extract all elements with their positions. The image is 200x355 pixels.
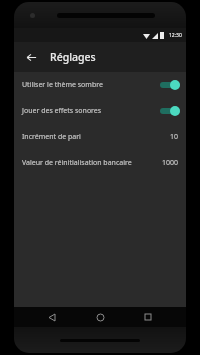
button[interactable]: Home bbox=[90, 307, 110, 327]
staticText: Jouer des effets sonores bbox=[22, 106, 160, 116]
button[interactable]: Back bbox=[42, 307, 62, 327]
button[interactable]: Valeur de réinitialisation bancaire bbox=[14, 150, 186, 176]
button[interactable]: Utiliser le thème sombre bbox=[14, 72, 186, 98]
staticText: 12:30 bbox=[169, 32, 182, 39]
staticText: Utiliser le thème sombre bbox=[22, 80, 160, 90]
staticText: Valeur de réinitialisation bancaire bbox=[22, 158, 161, 168]
button[interactable]: Jouer des effets sonores bbox=[14, 98, 186, 124]
button[interactable]: Recents bbox=[138, 307, 158, 327]
staticText: Réglages bbox=[50, 50, 96, 64]
button[interactable]: Incrément de pari bbox=[14, 124, 186, 150]
staticText: Incrément de pari bbox=[22, 132, 169, 142]
button[interactable]: Back bbox=[21, 47, 41, 67]
staticText: 1000 bbox=[161, 158, 178, 168]
staticText: 10 bbox=[169, 132, 178, 142]
